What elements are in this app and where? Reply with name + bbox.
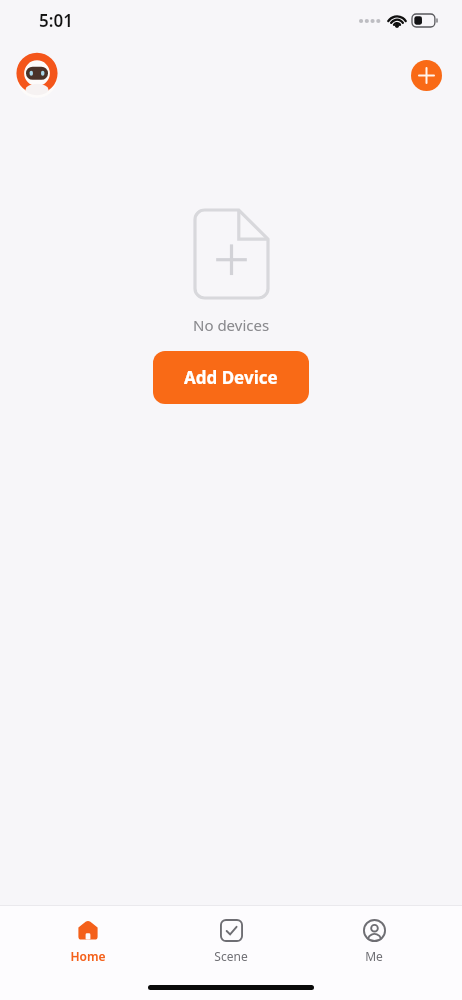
button[interactable]: Me — [319, 906, 429, 964]
staticText: No devices — [193, 315, 270, 335]
button[interactable]: Add — [411, 60, 442, 91]
staticText: Home — [70, 948, 106, 964]
button[interactable]: Scene — [176, 906, 286, 964]
button[interactable]: Assistant avatar — [14, 52, 60, 98]
button[interactable]: Add Device — [153, 351, 309, 404]
staticText: Scene — [214, 948, 248, 964]
staticText: 5:01 — [39, 9, 73, 32]
staticText: Me — [365, 948, 383, 964]
button[interactable]: Home — [33, 906, 143, 964]
staticText: Add Device — [184, 366, 278, 389]
